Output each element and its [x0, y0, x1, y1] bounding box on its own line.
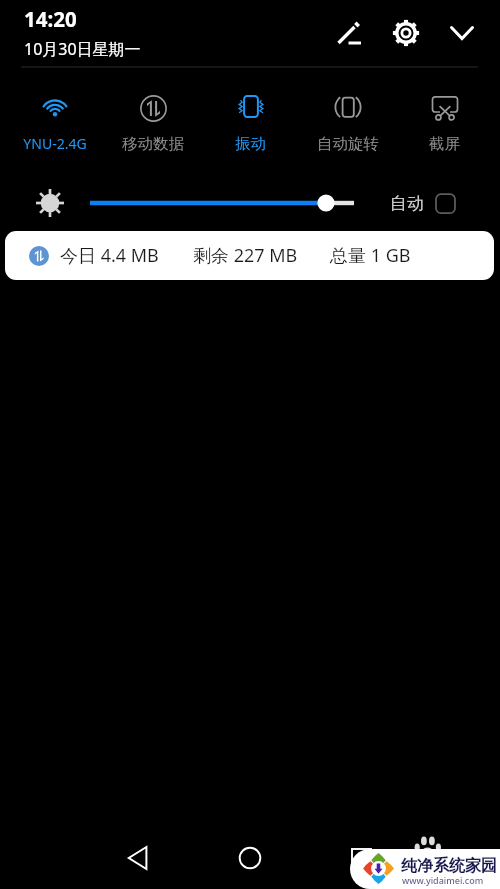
button[interactable]: Back: [111, 830, 167, 886]
staticText: 总量 1 GB: [330, 243, 411, 268]
staticText: 振动: [235, 134, 266, 154]
staticText: 截屏: [429, 134, 460, 154]
button[interactable]: Edit: [331, 15, 367, 51]
button[interactable]: Home: [222, 830, 278, 886]
staticText: www.yidaimei.com: [402, 874, 484, 886]
button[interactable]: 截屏: [396, 92, 493, 154]
staticText: 14:20: [24, 5, 77, 33]
staticText: 自动旋转: [317, 134, 379, 154]
staticText: 10月30日星期一: [24, 38, 141, 60]
staticText: 移动数据: [122, 134, 184, 154]
button[interactable]: Settings: [388, 15, 424, 51]
button[interactable]: 自动: [390, 193, 456, 214]
button[interactable]: YNU-2.4G: [6, 92, 104, 153]
button[interactable]: 自动旋转: [299, 92, 396, 154]
button[interactable]: 振动: [202, 92, 299, 154]
staticText: 自动: [390, 193, 424, 214]
staticText: YNU-2.4G: [23, 134, 87, 153]
button[interactable]: 移动数据: [104, 92, 202, 154]
staticText: 纯净系统家园: [401, 856, 497, 876]
button[interactable]: Collapse: [444, 15, 480, 51]
staticText: 今日 4.4 MB: [60, 243, 159, 268]
button[interactable]: 今日 4.4 MB: [5, 231, 494, 280]
button[interactable]: Brightness: [36, 189, 64, 217]
button[interactable]: Recents: [333, 830, 389, 886]
staticText: 剩余 227 MB: [193, 243, 298, 268]
